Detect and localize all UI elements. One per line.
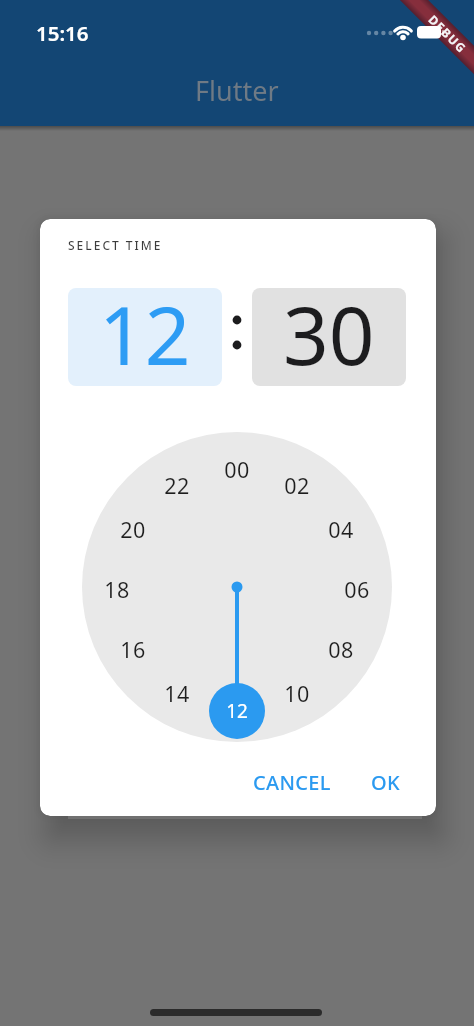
button[interactable]: CANCEL bbox=[244, 762, 340, 802]
staticText: 10 bbox=[284, 679, 310, 703]
staticText: Flutter bbox=[195, 72, 279, 106]
staticText: 04 bbox=[328, 515, 354, 539]
staticText: CANCEL bbox=[253, 769, 331, 796]
staticText: 12 bbox=[99, 288, 191, 377]
button[interactable]: 12 bbox=[209, 683, 265, 739]
button[interactable]: 30 bbox=[252, 288, 406, 386]
staticText: 02 bbox=[284, 471, 310, 495]
staticText: DEBUG bbox=[425, 11, 471, 57]
staticText: 14 bbox=[164, 679, 190, 703]
staticText: 08 bbox=[328, 635, 354, 659]
staticText: 16 bbox=[120, 635, 146, 659]
staticText: 20 bbox=[120, 515, 146, 539]
button[interactable]: 12 bbox=[68, 288, 222, 386]
staticText: 15:16 bbox=[36, 19, 89, 43]
staticText: 22 bbox=[164, 471, 190, 495]
staticText: SELECT TIME bbox=[68, 237, 163, 253]
staticText: OK bbox=[371, 769, 400, 796]
staticText: 06 bbox=[344, 575, 370, 599]
staticText: 00 bbox=[224, 455, 250, 479]
staticText: 30 bbox=[283, 288, 375, 377]
staticText: 18 bbox=[104, 575, 130, 599]
button[interactable]: OK bbox=[357, 762, 413, 802]
staticText: 12 bbox=[226, 698, 248, 724]
